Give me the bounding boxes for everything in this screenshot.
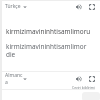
button[interactable]: Çeviri bildirimi (72, 85, 95, 90)
staticText: kirmizimavininhtisamlimordie (6, 42, 88, 59)
button[interactable]: Fullscreen source (85, 0, 98, 13)
staticText: kirmizimavininhtisamlimoru (6, 27, 91, 36)
staticText: Türkçe (5, 3, 21, 10)
button[interactable]: Almanca (5, 72, 27, 85)
button[interactable]: Fullscreen translation (85, 72, 98, 85)
staticText: Almanca (5, 72, 23, 85)
button[interactable]: Listen to source (72, 0, 85, 13)
button[interactable]: Türkçe (5, 3, 27, 10)
button[interactable]: Listen to translation (72, 72, 85, 85)
